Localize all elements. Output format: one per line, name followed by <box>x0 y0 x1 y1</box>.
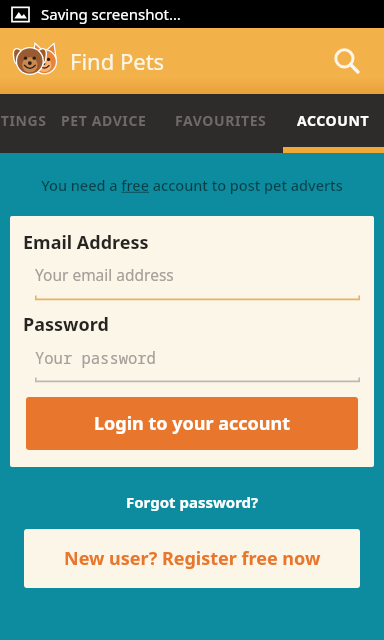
staticText: Forgot password? <box>126 492 259 512</box>
staticText: FAVOURITES <box>175 111 267 130</box>
button[interactable]: Your password <box>23 347 361 383</box>
button[interactable]: New user? Register free now <box>24 529 360 588</box>
staticText: Your password <box>35 347 156 368</box>
staticText: ACCOUNT <box>297 111 370 130</box>
staticText: You need a free account to post pet adve… <box>41 175 343 195</box>
button[interactable]: LISTINGS <box>0 91 50 150</box>
staticText: Saving screenshot… <box>41 4 181 24</box>
staticText: Email Address <box>23 230 149 255</box>
button[interactable]: Your email address <box>23 264 361 301</box>
staticText: Password <box>23 312 109 337</box>
staticText: Your email address <box>35 264 174 285</box>
staticText: Login to your account <box>94 411 290 436</box>
staticText: LISTINGS <box>0 111 47 130</box>
button[interactable]: Search <box>324 38 370 84</box>
button[interactable]: PET ADVICE <box>38 91 170 150</box>
staticText: Find Pets <box>70 46 165 76</box>
button[interactable]: ACCOUNT <box>283 94 384 153</box>
button[interactable]: Forgot password? <box>0 488 384 516</box>
staticText: New user? Register free now <box>64 546 321 571</box>
button[interactable]: FAVOURITES <box>158 91 283 150</box>
button[interactable]: Login to your account <box>26 397 358 450</box>
staticText: PET ADVICE <box>61 111 147 130</box>
